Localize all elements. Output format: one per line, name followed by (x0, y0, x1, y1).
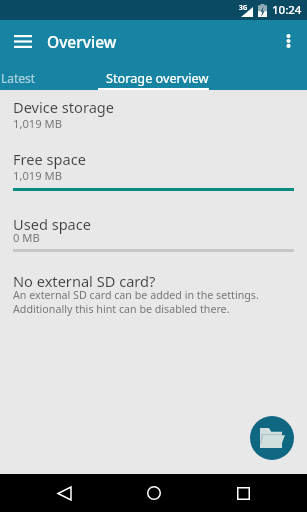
button[interactable]: Latest (0, 62, 101, 90)
button[interactable]: Recent apps (221, 474, 265, 512)
staticText: Latest (1, 70, 36, 86)
button[interactable]: Menu (8, 26, 38, 56)
staticText: 1,019 MB (13, 168, 62, 183)
staticText: Storage overview (106, 69, 209, 86)
button[interactable]: Back (42, 474, 86, 512)
button[interactable]: No external SD card? (0, 267, 307, 323)
staticText: Free space (13, 149, 86, 169)
button[interactable]: More options (273, 26, 303, 56)
staticText: No external SD card? (13, 271, 156, 291)
button[interactable]: Used space (0, 211, 307, 259)
button[interactable]: Device storage (0, 94, 307, 133)
staticText: Used space (13, 214, 92, 234)
button[interactable]: Storage overview (98, 62, 209, 90)
staticText: 1,019 MB (13, 116, 62, 131)
button[interactable]: Home (132, 474, 176, 512)
staticText: 3G (239, 3, 248, 12)
staticText: An external SD card can be added in the … (13, 288, 259, 316)
button[interactable]: Free space (0, 146, 307, 198)
staticText: 10:24 (272, 2, 302, 18)
staticText: Device storage (13, 97, 115, 117)
staticText: Overview (47, 31, 117, 52)
button[interactable]: Open folder (250, 416, 294, 460)
staticText: 0 MB (13, 230, 40, 245)
